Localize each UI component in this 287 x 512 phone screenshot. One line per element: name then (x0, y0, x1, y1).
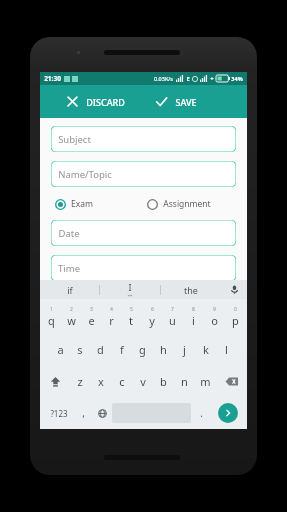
staticText: Subject (58, 133, 91, 146)
button[interactable]: Assignment (147, 196, 211, 212)
button[interactable]: Enter (218, 403, 238, 423)
staticText: E (186, 75, 190, 82)
button[interactable]: . (191, 399, 211, 427)
button[interactable]: 0 (225, 301, 246, 333)
staticText: I (128, 281, 132, 293)
button[interactable]: Name/Topic (51, 161, 236, 187)
staticText: g (139, 342, 146, 357)
button[interactable]: 4 (101, 301, 121, 333)
staticText: Exam (71, 198, 93, 210)
button[interactable]: if (40, 280, 99, 299)
button[interactable]: l (216, 333, 237, 365)
button[interactable]: 7 (162, 301, 183, 333)
staticText: r (109, 313, 114, 328)
staticText: 4 (110, 306, 113, 313)
staticText: 5 (130, 306, 133, 313)
button[interactable]: 5 (121, 301, 141, 333)
button[interactable]: k (195, 333, 216, 365)
button[interactable]: 1 (41, 301, 61, 333)
button[interactable]: z (69, 365, 90, 397)
staticText: 34% (231, 75, 243, 82)
staticText: 0.03K/s (154, 75, 173, 82)
button[interactable]: d (90, 333, 111, 365)
staticText: 21:30 (44, 74, 61, 83)
staticText: . (200, 406, 203, 420)
button[interactable]: a (50, 333, 70, 365)
staticText: 2 (70, 306, 73, 313)
button[interactable]: s (70, 333, 90, 365)
staticText: 1 (50, 306, 53, 313)
staticText: d (97, 342, 104, 357)
staticText: s (77, 342, 83, 357)
staticText: Date (58, 227, 80, 240)
staticText: ?123 (50, 408, 68, 419)
button[interactable]: 9 (204, 301, 225, 333)
staticText: 6 (151, 306, 154, 313)
button[interactable]: n (174, 365, 195, 397)
staticText: Time (58, 262, 80, 275)
button[interactable]: g (132, 333, 153, 365)
staticText: 8 (192, 306, 195, 313)
staticText: i (192, 313, 195, 328)
staticText: p (232, 313, 239, 328)
staticText: z (77, 374, 83, 389)
button[interactable]: Exam (55, 196, 147, 212)
staticText: v (140, 374, 146, 389)
staticText: h (160, 342, 167, 357)
button[interactable]: Time (51, 255, 236, 281)
button[interactable]: v (132, 365, 153, 397)
staticText: c (119, 374, 125, 389)
button[interactable]: 3 (81, 301, 101, 333)
staticText: a (57, 342, 64, 357)
staticText: x (98, 374, 104, 389)
staticText: e (88, 313, 95, 328)
staticText: the (184, 284, 198, 296)
staticText: Name/Topic (58, 168, 112, 181)
button[interactable]: m (195, 365, 216, 397)
staticText: 7 (171, 306, 174, 313)
staticText: if (67, 284, 73, 296)
staticText: w (67, 313, 76, 328)
button[interactable]: c (111, 365, 132, 397)
staticText: + (210, 75, 214, 83)
staticText: f (120, 342, 124, 357)
button[interactable]: Backspace (216, 365, 246, 397)
button[interactable]: 8 (183, 301, 204, 333)
button[interactable]: Subject (51, 126, 236, 152)
button[interactable]: DISCARD (40, 85, 143, 118)
staticText: u (169, 313, 176, 328)
button[interactable]: j (174, 333, 195, 365)
staticText: l (225, 342, 228, 357)
button[interactable]: x (90, 365, 111, 397)
staticText: Assignment (163, 198, 211, 210)
button[interactable]: ?123 (43, 399, 75, 427)
staticText: j (183, 342, 186, 357)
button[interactable]: f (111, 333, 132, 365)
button[interactable]: b (153, 365, 174, 397)
staticText: SAVE (175, 96, 197, 108)
staticText: ••• (127, 293, 133, 299)
button[interactable]: I (100, 280, 160, 299)
staticText: b (160, 374, 167, 389)
staticText: DISCARD (86, 96, 125, 108)
button[interactable]: Voice input (221, 280, 247, 299)
staticText: q (48, 313, 55, 328)
button[interactable]: 6 (141, 301, 162, 333)
staticText: n (181, 374, 188, 389)
staticText: y (149, 313, 155, 328)
button[interactable]: h (153, 333, 174, 365)
staticText: t (129, 313, 133, 328)
staticText: m (200, 374, 211, 389)
button[interactable]: Change keyboard language (92, 399, 112, 427)
button[interactable]: Shift (41, 365, 69, 397)
button[interactable]: the (161, 280, 221, 299)
staticText: 0 (234, 306, 237, 313)
button[interactable]: Date (51, 220, 236, 246)
button[interactable]: 2 (61, 301, 81, 333)
staticText: 3 (90, 306, 93, 313)
button[interactable]: , (75, 399, 92, 427)
staticText: 9 (213, 306, 216, 313)
staticText: k (203, 342, 209, 357)
button[interactable]: SAVE (143, 85, 247, 118)
